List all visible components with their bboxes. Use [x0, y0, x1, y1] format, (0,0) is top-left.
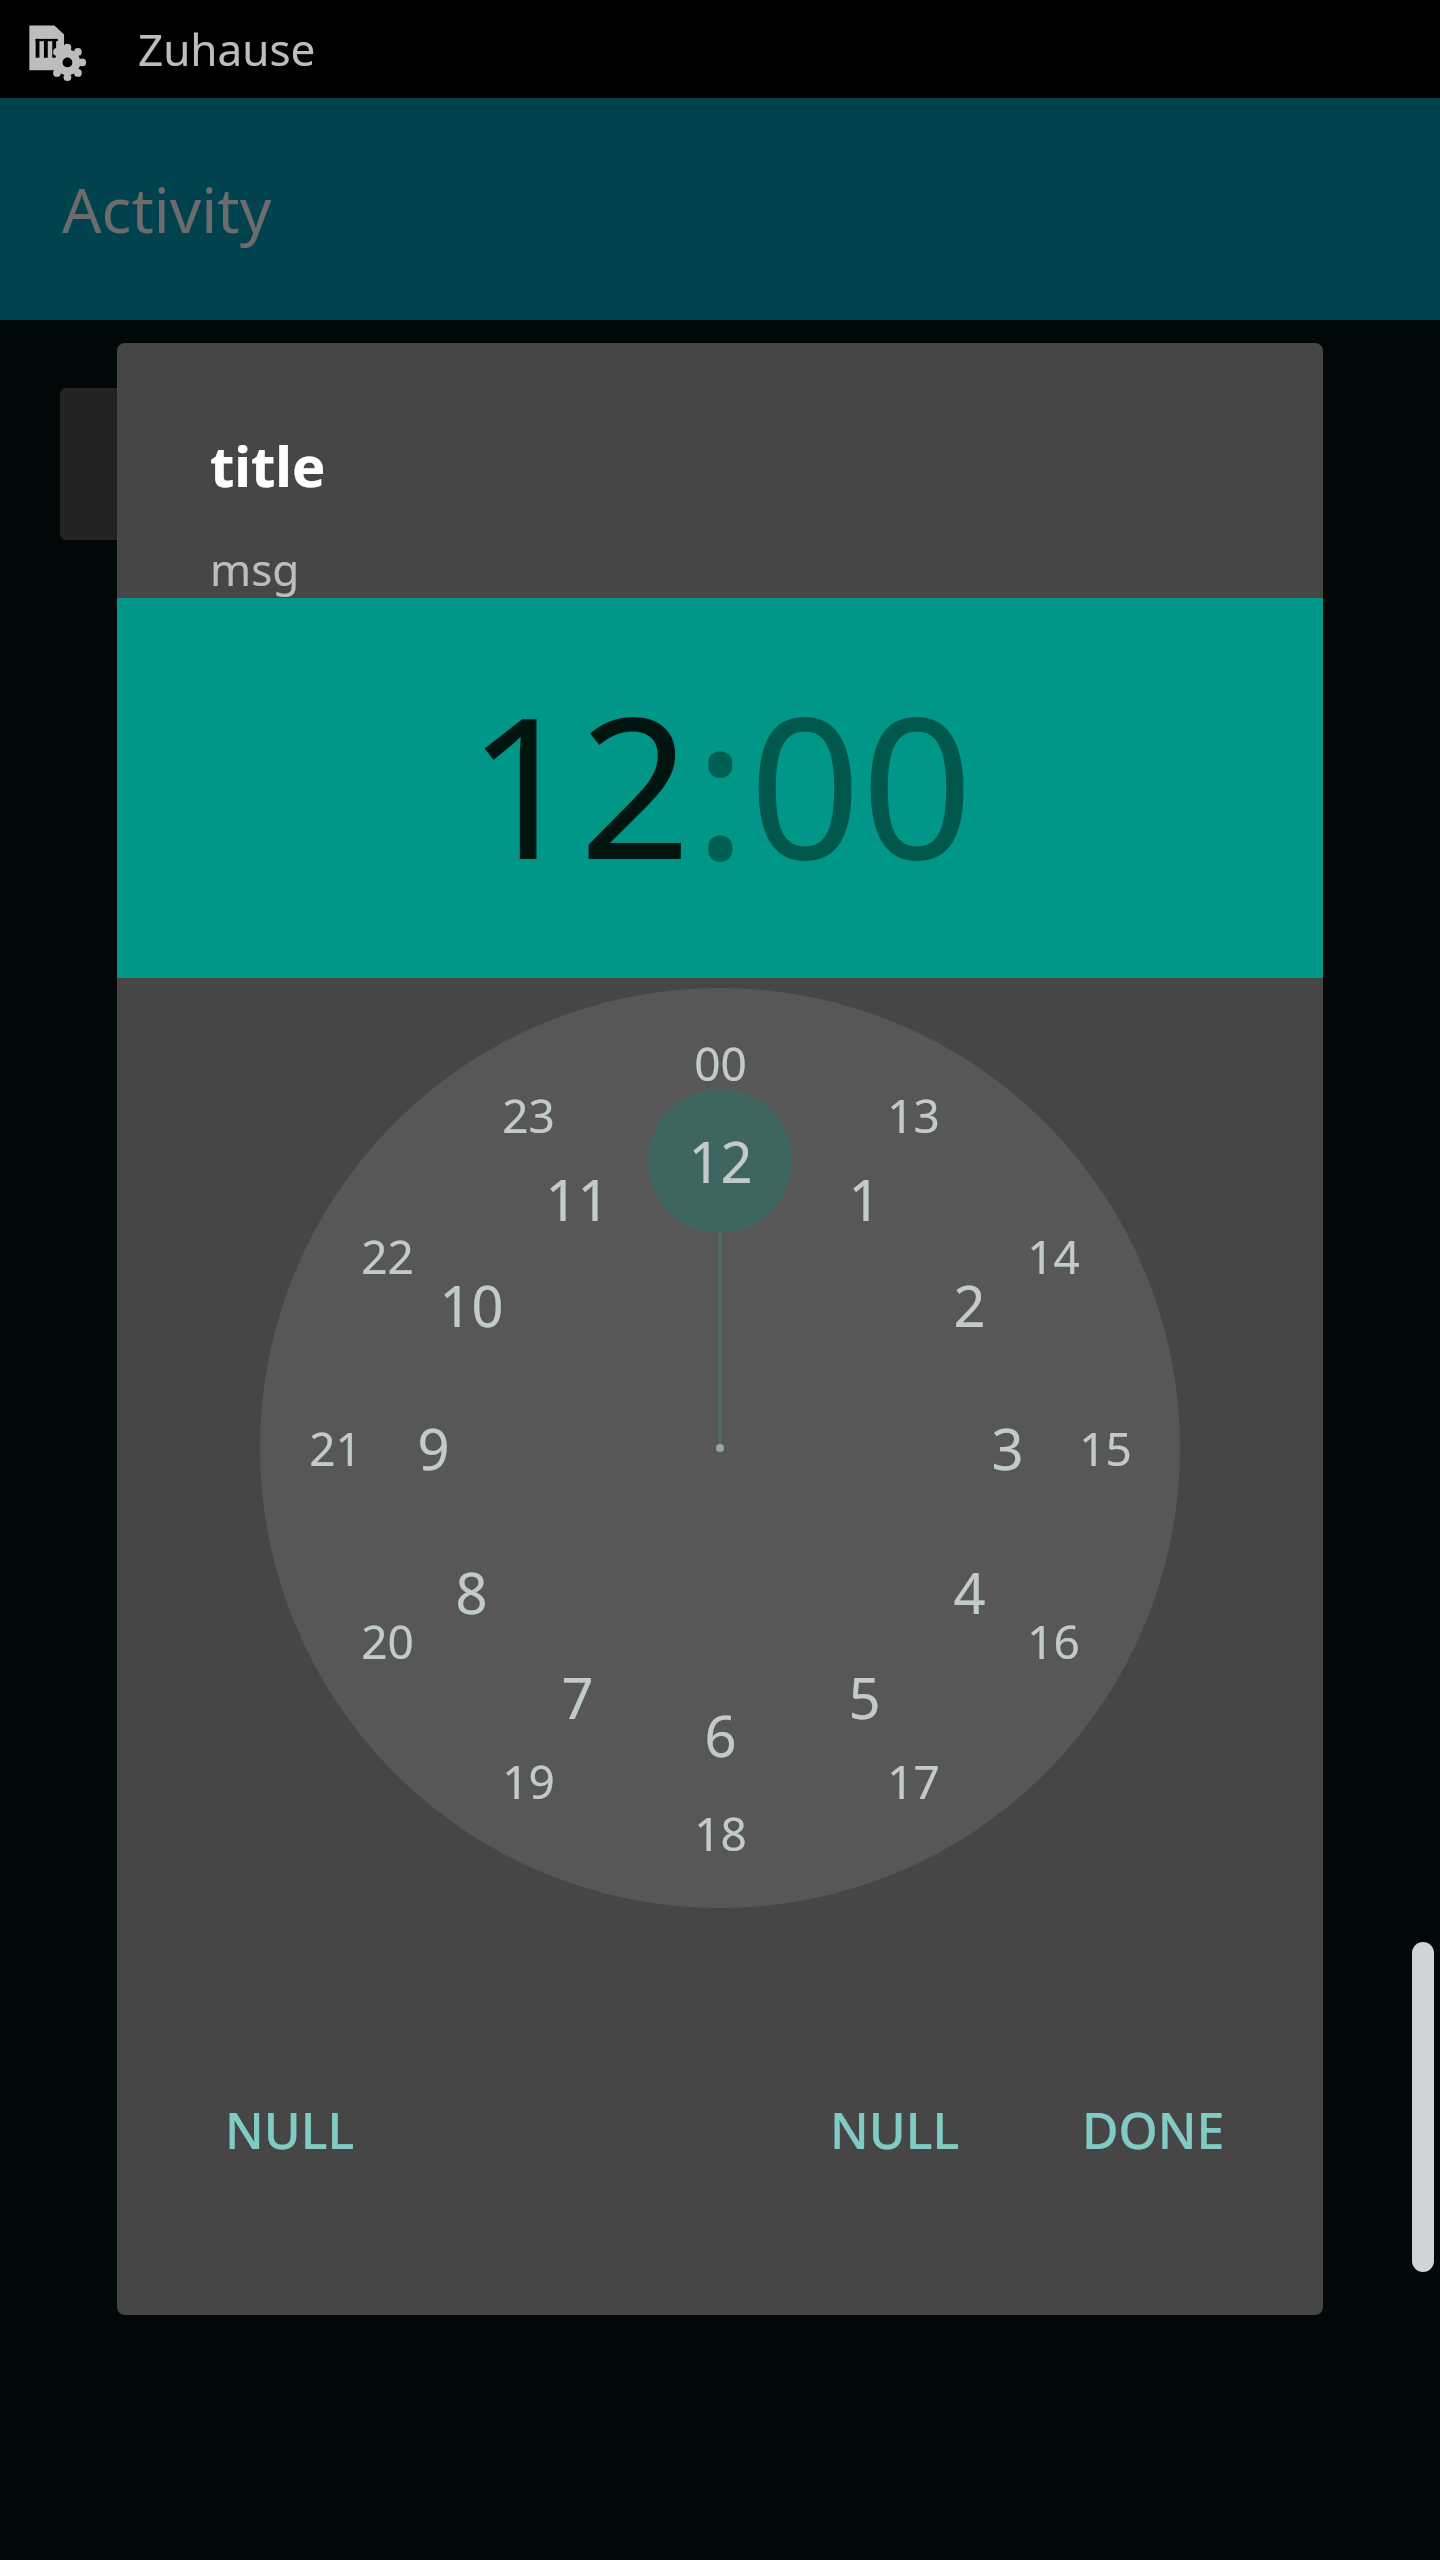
- button[interactable]: NULL: [117, 2070, 379, 2190]
- staticText: NULL: [225, 2096, 355, 2164]
- button[interactable]: DONE: [1056, 2070, 1323, 2190]
- button[interactable]: 16: [983, 1571, 1123, 1711]
- staticText: 00: [694, 1032, 747, 1095]
- button[interactable]: 23: [458, 1045, 598, 1185]
- staticText: 21: [309, 1417, 362, 1480]
- staticText: NULL: [830, 2096, 960, 2164]
- button[interactable]: 21: [265, 1378, 405, 1518]
- staticText: :: [694, 649, 747, 916]
- button[interactable]: 22: [317, 1186, 457, 1326]
- button[interactable]: 19: [458, 1711, 598, 1851]
- button[interactable]: 7: [507, 1627, 647, 1767]
- staticText: title: [210, 427, 326, 503]
- staticText: 13: [887, 1084, 940, 1147]
- button[interactable]: NULL: [804, 2070, 986, 2190]
- button[interactable]: 14: [983, 1186, 1123, 1326]
- button[interactable]: 3: [937, 1378, 1077, 1518]
- button[interactable]: 12: [465, 649, 694, 916]
- button[interactable]: 12: [650, 1091, 790, 1231]
- staticText: 22: [361, 1225, 414, 1288]
- button[interactable]: 18: [650, 1763, 790, 1903]
- button[interactable]: 10: [401, 1235, 541, 1375]
- button[interactable]: 6: [650, 1665, 790, 1805]
- staticText: 9: [417, 1410, 450, 1486]
- button[interactable]: 13: [843, 1045, 983, 1185]
- staticText: 16: [1027, 1610, 1080, 1673]
- staticText: 11: [545, 1161, 610, 1237]
- staticText: 23: [502, 1084, 555, 1147]
- staticText: Zuhause: [138, 19, 316, 79]
- staticText: 8: [455, 1554, 488, 1630]
- staticText: 17: [887, 1750, 940, 1813]
- staticText: Activity: [62, 167, 272, 251]
- staticText: 7: [561, 1659, 594, 1735]
- button[interactable]: 9: [363, 1378, 503, 1518]
- staticText: 18: [694, 1802, 747, 1865]
- button[interactable]: 5: [794, 1627, 934, 1767]
- staticText: 15: [1079, 1417, 1132, 1480]
- staticText: 6: [704, 1697, 737, 1773]
- staticText: 10: [439, 1267, 504, 1343]
- button[interactable]: 00: [747, 649, 976, 916]
- button[interactable]: 00: [650, 993, 790, 1133]
- staticText: 12: [467, 649, 692, 916]
- staticText: 12: [688, 1123, 753, 1199]
- staticText: 20: [361, 1610, 414, 1673]
- button[interactable]: 4: [899, 1522, 1039, 1662]
- button[interactable]: 15: [1035, 1378, 1175, 1518]
- button[interactable]: 20: [317, 1571, 457, 1711]
- staticText: 4: [953, 1554, 986, 1630]
- staticText: 3: [991, 1410, 1024, 1486]
- button[interactable]: 11: [507, 1129, 647, 1269]
- button[interactable]: 1: [794, 1129, 934, 1269]
- staticText: 2: [953, 1267, 986, 1343]
- staticText: 19: [502, 1750, 555, 1813]
- staticText: 00: [749, 649, 974, 916]
- staticText: 14: [1027, 1225, 1080, 1288]
- button[interactable]: 2: [899, 1235, 1039, 1375]
- button[interactable]: 8: [401, 1522, 541, 1662]
- staticText: 5: [848, 1659, 881, 1735]
- staticText: 1: [848, 1161, 881, 1237]
- button[interactable]: 17: [843, 1711, 983, 1851]
- staticText: msg: [210, 539, 300, 598]
- staticText: DONE: [1082, 2096, 1225, 2164]
